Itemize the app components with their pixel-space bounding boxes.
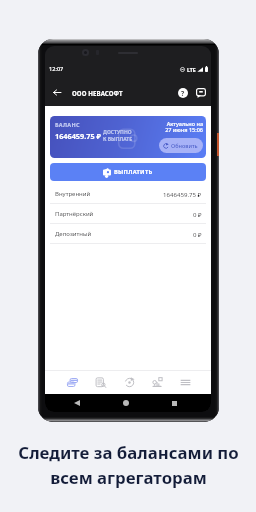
button[interactable]: История: [117, 371, 141, 394]
button[interactable]: Помощь: [176, 86, 190, 100]
button[interactable]: Меню: [173, 371, 197, 394]
staticText: Актуально на 27 июня 15:06: [165, 120, 203, 134]
button[interactable]: Внутренний: [50, 184, 206, 204]
button[interactable]: Платежи: [60, 371, 84, 394]
staticText: Депозитный: [55, 230, 92, 238]
staticText: 1646459.75 ₽: [163, 190, 202, 198]
staticText: Обновить: [171, 142, 198, 149]
staticText: Внутренний: [55, 190, 91, 198]
button[interactable]: Партнёрский: [50, 204, 206, 224]
button[interactable]: Чат: [194, 86, 208, 100]
button[interactable]: Статистика: [145, 371, 169, 394]
staticText: ДОСТУПНО К ВЫПЛАТЕ: [103, 129, 132, 142]
staticText: 0 ₽: [193, 230, 202, 238]
staticText: 0 ₽: [193, 210, 202, 218]
button[interactable]: Обновить: [159, 138, 203, 153]
button[interactable]: Домой: [119, 396, 133, 410]
staticText: БАЛАНС: [55, 121, 80, 128]
button[interactable]: Приложения: [167, 396, 181, 410]
button[interactable]: Назад: [49, 85, 64, 100]
staticText: ООО НЕВАСОФТ: [72, 89, 123, 97]
staticText: 12:07: [49, 65, 64, 73]
button[interactable]: ВЫПЛАТИТЬ: [50, 163, 206, 181]
button[interactable]: Отчёты: [88, 371, 112, 394]
staticText: Следите за балансами по всем агрегаторам: [18, 441, 239, 489]
staticText: 1646459.75 ₽: [55, 131, 101, 141]
staticText: ВЫПЛАТИТЬ: [114, 168, 153, 176]
button[interactable]: Депозитный: [50, 224, 206, 244]
staticText: LTE: [187, 66, 196, 73]
button[interactable]: БАЛАНС: [50, 116, 206, 158]
button[interactable]: Назад: [70, 396, 84, 410]
staticText: ?: [181, 89, 185, 98]
staticText: Партнёрский: [55, 210, 94, 218]
